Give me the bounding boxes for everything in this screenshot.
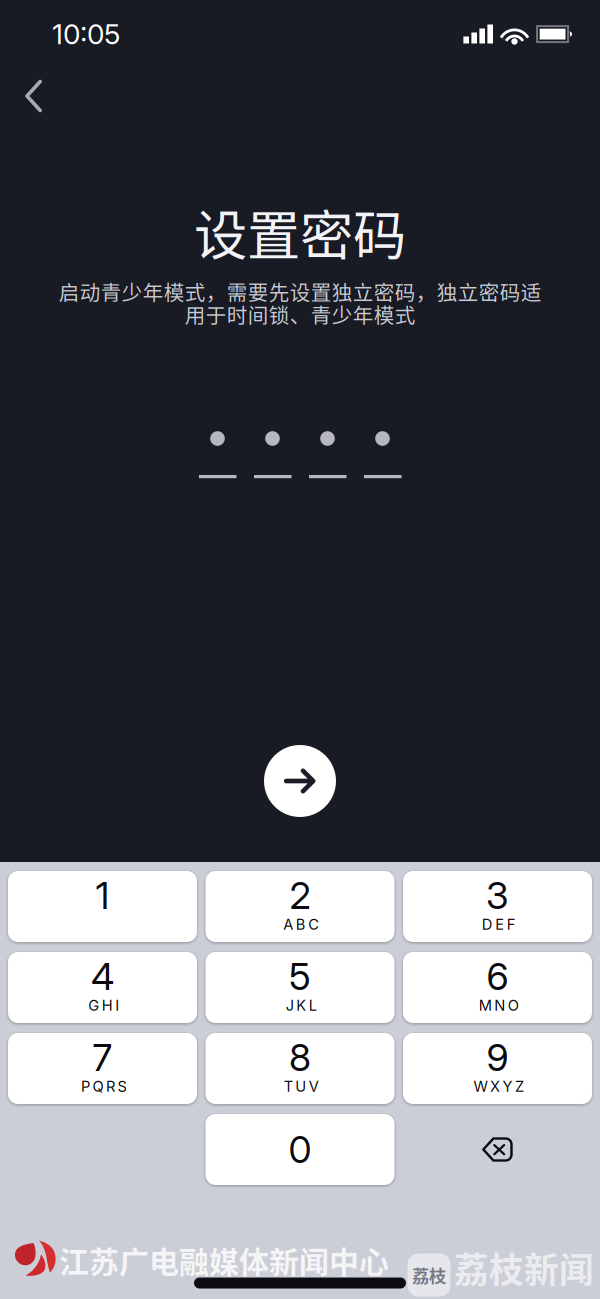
- staticText: WXYZ: [473, 1078, 524, 1095]
- staticText: ABC: [283, 916, 319, 933]
- staticText: 0: [288, 1127, 311, 1172]
- staticText: 启动青少年模式，需要先设置独立密码，独立密码适用于时间锁、青少年模式: [58, 277, 541, 329]
- staticText: 10:05: [52, 17, 120, 51]
- staticText: JKL: [286, 997, 317, 1014]
- staticText: 设置密码: [194, 193, 406, 271]
- button[interactable]: 6: [403, 952, 592, 1023]
- button[interactable]: 7: [8, 1033, 197, 1104]
- staticText: 4: [91, 954, 114, 999]
- button[interactable]: 9: [403, 1033, 592, 1104]
- button[interactable]: 5: [205, 952, 394, 1023]
- button[interactable]: 4: [8, 952, 197, 1023]
- staticText: 1: [95, 873, 109, 918]
- staticText: DEF: [482, 916, 516, 933]
- staticText: 3: [486, 873, 509, 918]
- button[interactable]: Delete: [403, 1114, 592, 1185]
- staticText: 6: [486, 954, 508, 999]
- staticText: MNO: [479, 997, 519, 1014]
- staticText: GHI: [88, 997, 119, 1014]
- button[interactable]: 0: [205, 1114, 394, 1185]
- staticText: 江苏广电融媒体新闻中心: [59, 1238, 389, 1282]
- button[interactable]: 2: [205, 871, 394, 942]
- staticText: 荔枝: [412, 1262, 446, 1288]
- button[interactable]: 3: [403, 871, 592, 942]
- button[interactable]: Continue: [264, 745, 336, 817]
- button[interactable]: 1: [8, 871, 197, 942]
- staticText: 9: [486, 1035, 508, 1080]
- button[interactable]: 8: [205, 1033, 394, 1104]
- staticText: PQRS: [81, 1078, 126, 1095]
- staticText: 5: [289, 954, 311, 999]
- staticText: 2: [289, 873, 310, 918]
- staticText: 8: [289, 1035, 311, 1080]
- staticText: 荔枝新闻: [454, 1243, 594, 1293]
- staticText: TUV: [284, 1078, 319, 1095]
- button[interactable]: Back: [12, 70, 64, 122]
- staticText: 7: [92, 1035, 112, 1080]
